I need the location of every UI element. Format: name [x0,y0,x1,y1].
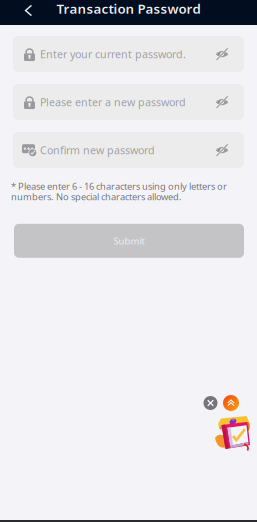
button[interactable]: Scroll to top [223,395,239,411]
staticText: Transaction Password [56,0,200,17]
button[interactable]: Rewards [214,416,250,452]
staticText: Please enter a new password [40,95,186,109]
staticText: Submit [113,235,144,247]
button[interactable]: Submit [14,224,244,258]
button[interactable]: Show password [210,89,234,115]
button[interactable]: Back [0,0,57,25]
staticText: Enter your current password. [40,47,186,61]
button[interactable]: Close [203,396,217,410]
button[interactable]: Show password [210,41,234,67]
button[interactable]: Show password [210,137,234,163]
staticText: numbers. No special characters allowed. [11,190,182,203]
staticText: Confirm new password [40,143,155,157]
staticText: * Please enter 6 - 16 characters using o… [11,180,227,192]
